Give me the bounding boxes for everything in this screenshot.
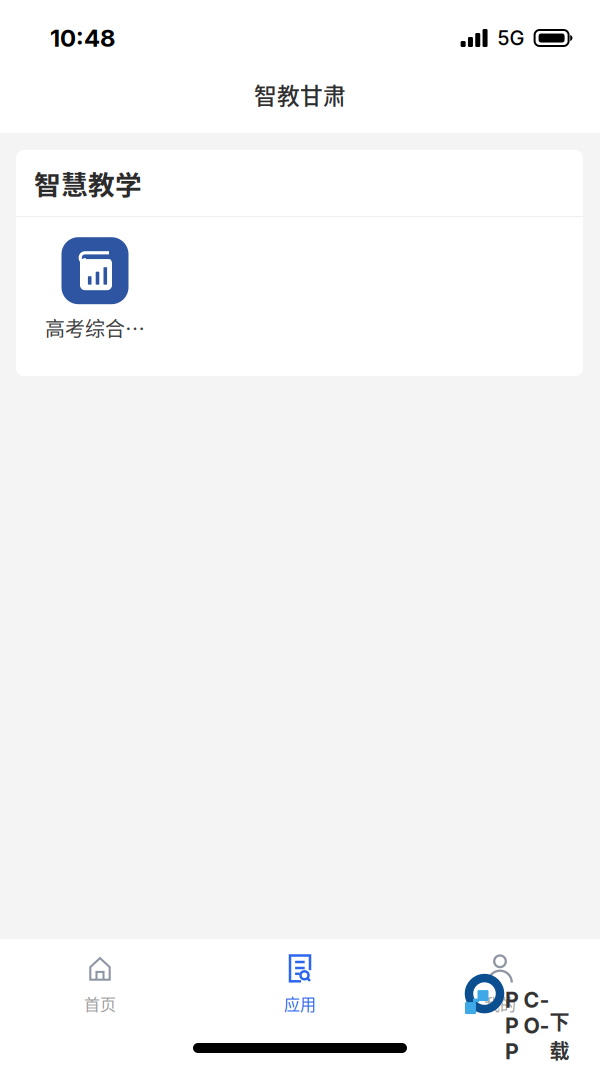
staticText: 应用 [284,992,316,1015]
staticText: 10:48 [50,23,115,52]
staticText: 首页 [84,992,116,1015]
staticText: 我的 [484,992,516,1015]
staticText: 下载 [549,1007,569,1064]
staticText: 智慧教学 [34,164,142,202]
button[interactable]: 应用 [200,939,400,1029]
staticText: PCPOP [505,987,549,1064]
staticText: 5G [498,26,525,50]
button[interactable]: 首页 [0,939,200,1029]
button[interactable]: 高考综合… [39,217,151,376]
button[interactable]: 我的 [400,939,600,1029]
staticText: 高考综合… [45,313,145,342]
staticText: 智教甘肃 [254,78,346,111]
